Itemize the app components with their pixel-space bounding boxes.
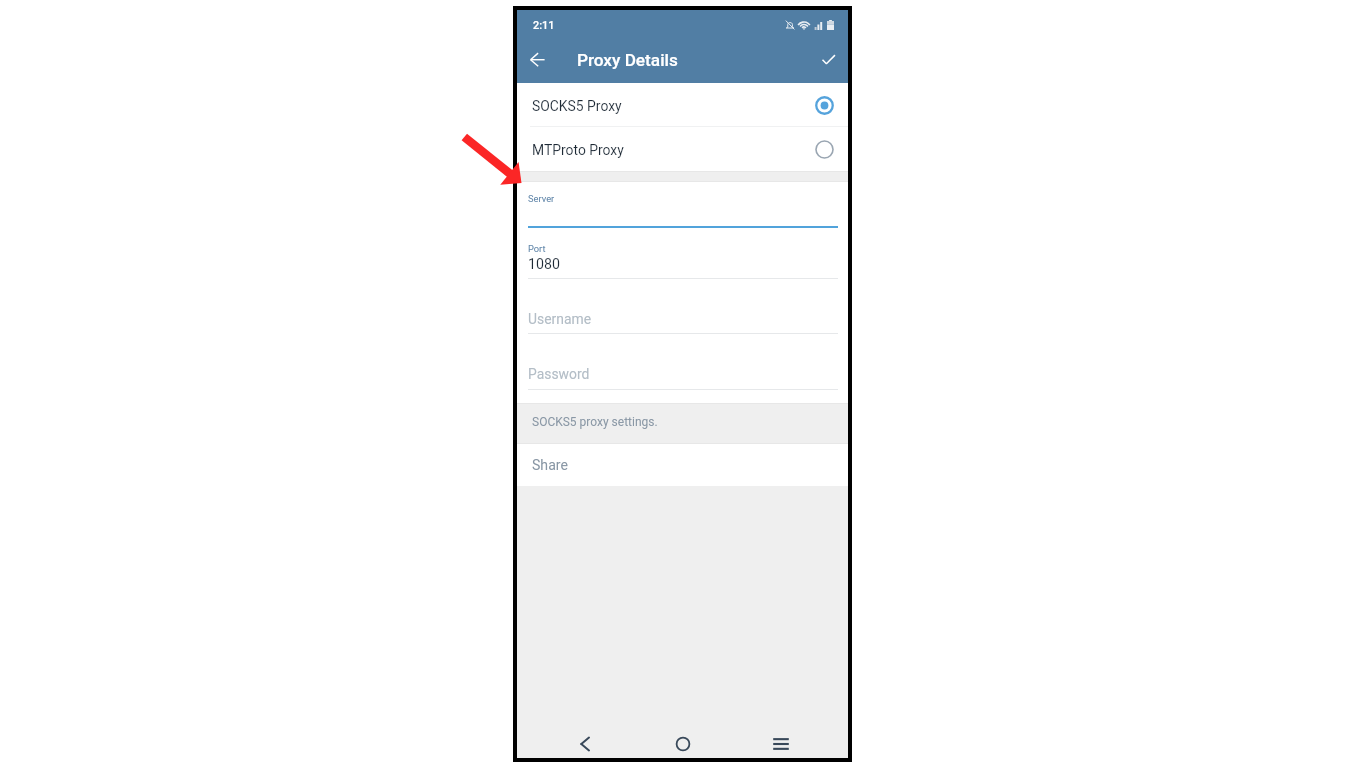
button[interactable]: Port (517, 230, 848, 279)
staticText: Password (528, 366, 590, 382)
staticText: Proxy Details (577, 50, 678, 70)
button[interactable]: Back (523, 45, 551, 73)
button[interactable]: Save (814, 45, 842, 73)
button[interactable]: Username (517, 279, 848, 334)
button[interactable]: Share (517, 443, 848, 486)
staticText: Server (528, 193, 555, 204)
button[interactable]: MTProto Proxy (517, 127, 848, 171)
button[interactable]: SOCKS5 Proxy (517, 83, 848, 127)
button[interactable]: Recents (767, 730, 795, 758)
staticText: 1080 (528, 256, 560, 273)
button[interactable]: Back (571, 730, 599, 758)
button[interactable]: Server (517, 181, 848, 229)
staticText: SOCKS5 proxy settings. (532, 415, 658, 429)
staticText: Port (528, 243, 546, 254)
staticText: Share (532, 457, 568, 474)
staticText: 2:11 (533, 19, 555, 32)
button[interactable]: Home (669, 730, 697, 758)
staticText: Username (528, 311, 592, 327)
staticText: SOCKS5 Proxy (532, 98, 622, 114)
button[interactable]: Password (517, 334, 848, 390)
staticText: MTProto Proxy (532, 142, 624, 158)
